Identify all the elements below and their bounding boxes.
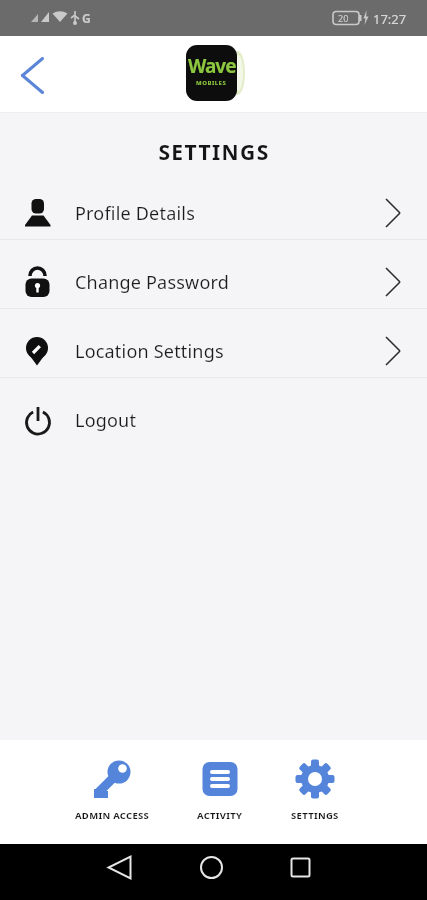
button[interactable]: [285, 844, 427, 900]
staticText: ACTIVITY: [197, 809, 243, 822]
button[interactable]: SETTINGS: [270, 740, 360, 844]
staticText: G: [82, 10, 91, 26]
button[interactable]: Logout: [0, 378, 427, 447]
staticText: 17:27: [373, 10, 407, 28]
staticText: MOBILES: [196, 79, 227, 87]
button[interactable]: [143, 844, 285, 900]
staticText: Location Settings: [75, 339, 224, 364]
button[interactable]: ADMIN ACCESS: [67, 740, 157, 844]
button[interactable]: ACTIVITY: [175, 740, 265, 844]
staticText: 20: [338, 12, 349, 24]
button[interactable]: Change Password: [0, 240, 427, 309]
staticText: ADMIN ACCESS: [75, 809, 150, 822]
staticText: SETTINGS: [158, 138, 270, 167]
button[interactable]: [0, 844, 143, 900]
button[interactable]: [12, 55, 52, 95]
staticText: Logout: [75, 408, 137, 433]
staticText: Change Password: [75, 270, 230, 295]
button[interactable]: Profile Details: [0, 171, 427, 240]
button[interactable]: Location Settings: [0, 309, 427, 378]
button[interactable]: Wave: [186, 45, 246, 101]
staticText: SETTINGS: [291, 809, 339, 822]
staticText: Profile Details: [75, 201, 195, 226]
staticText: Wave: [188, 53, 236, 79]
